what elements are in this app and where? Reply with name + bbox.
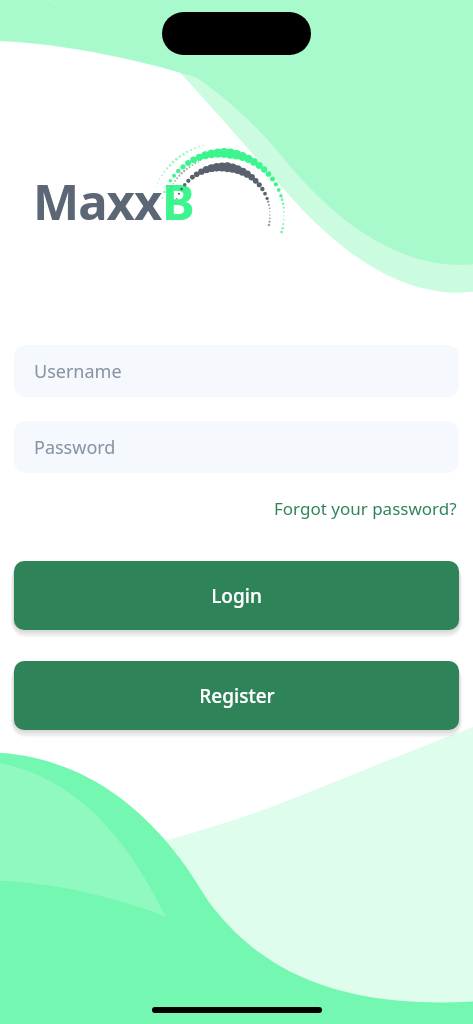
staticText: Password <box>34 435 116 460</box>
staticText: Username <box>34 359 122 384</box>
staticText: B <box>162 168 194 235</box>
button[interactable]: Forgot your password? <box>272 493 459 524</box>
button[interactable]: Username input <box>14 345 459 397</box>
staticText: Login <box>211 583 262 609</box>
button[interactable]: Login <box>14 561 459 630</box>
staticText: Maxx <box>33 168 162 235</box>
button[interactable]: Register <box>14 661 459 730</box>
staticText: Register <box>199 683 275 709</box>
button[interactable]: Password input <box>14 421 459 473</box>
staticText: Forgot your password? <box>274 497 457 520</box>
